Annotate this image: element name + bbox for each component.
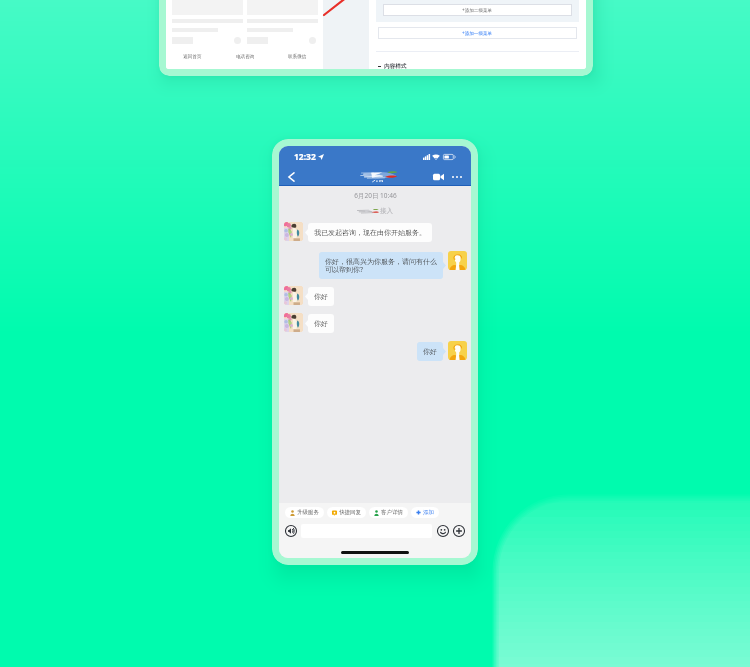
staticText: 接入 [380, 207, 393, 215]
staticText: 添加 [423, 509, 434, 516]
staticText: 12:32 [294, 151, 316, 163]
staticText: 你好 [423, 347, 437, 356]
button[interactable]: 我已发起咨询，现在由你开始服务。 [308, 223, 432, 242]
staticText: +添加一级菜单 [462, 30, 493, 36]
staticText: +添加二级菜单 [462, 7, 493, 13]
staticText: 客户详情 [381, 509, 403, 516]
button[interactable]: 客户详情 [369, 507, 408, 518]
button[interactable]: Back [284, 169, 298, 185]
button[interactable]: +添加一级菜单 [378, 27, 577, 39]
button[interactable]: Video call [430, 169, 446, 185]
button[interactable]: 你好 [417, 342, 443, 361]
staticText: 你好 [314, 319, 328, 328]
staticText: 联系微信 [288, 54, 307, 60]
button[interactable]: 升级服务 [285, 507, 324, 518]
button[interactable]: 电话咨询 [219, 49, 271, 65]
staticText: 我已发起咨询，现在由你开始服务。 [314, 228, 426, 237]
staticText: 你好 [314, 292, 328, 301]
button[interactable]: Voice input [285, 525, 297, 537]
button[interactable]: 你好，很高兴为你服务，请问有什么 可以帮到你? [319, 252, 443, 279]
staticText: 电话咨询 [236, 54, 255, 60]
button[interactable]: 你好 [308, 314, 334, 333]
staticText: 返回首页 [183, 54, 202, 60]
button[interactable]: 联系微信 [271, 49, 323, 65]
button[interactable]: 你好 [308, 287, 334, 306]
button[interactable]: 添加 [411, 507, 439, 518]
button[interactable]: +添加二级菜单 [383, 4, 572, 16]
button[interactable]: 快捷回复 [327, 507, 366, 518]
button[interactable]: Emoji [437, 525, 449, 537]
staticText: 你好，很高兴为你服务，请问有什么 可以帮到你? [325, 257, 437, 274]
staticText: 内容样式 [384, 63, 407, 69]
button[interactable]: 返回首页 [166, 49, 219, 65]
button[interactable]: More options [449, 169, 465, 185]
button[interactable]: More [453, 525, 465, 537]
button[interactable]: Customer avatar [284, 286, 303, 305]
button[interactable]: Customer avatar [284, 313, 303, 332]
staticText: 升级服务 [297, 509, 319, 516]
staticText: 6月20日 10:46 [354, 191, 397, 200]
staticText: 快捷回复 [339, 509, 361, 516]
button[interactable]: Customer avatar [284, 222, 303, 241]
button[interactable]: Agent avatar [448, 341, 467, 360]
button[interactable]: Agent avatar [448, 251, 467, 270]
